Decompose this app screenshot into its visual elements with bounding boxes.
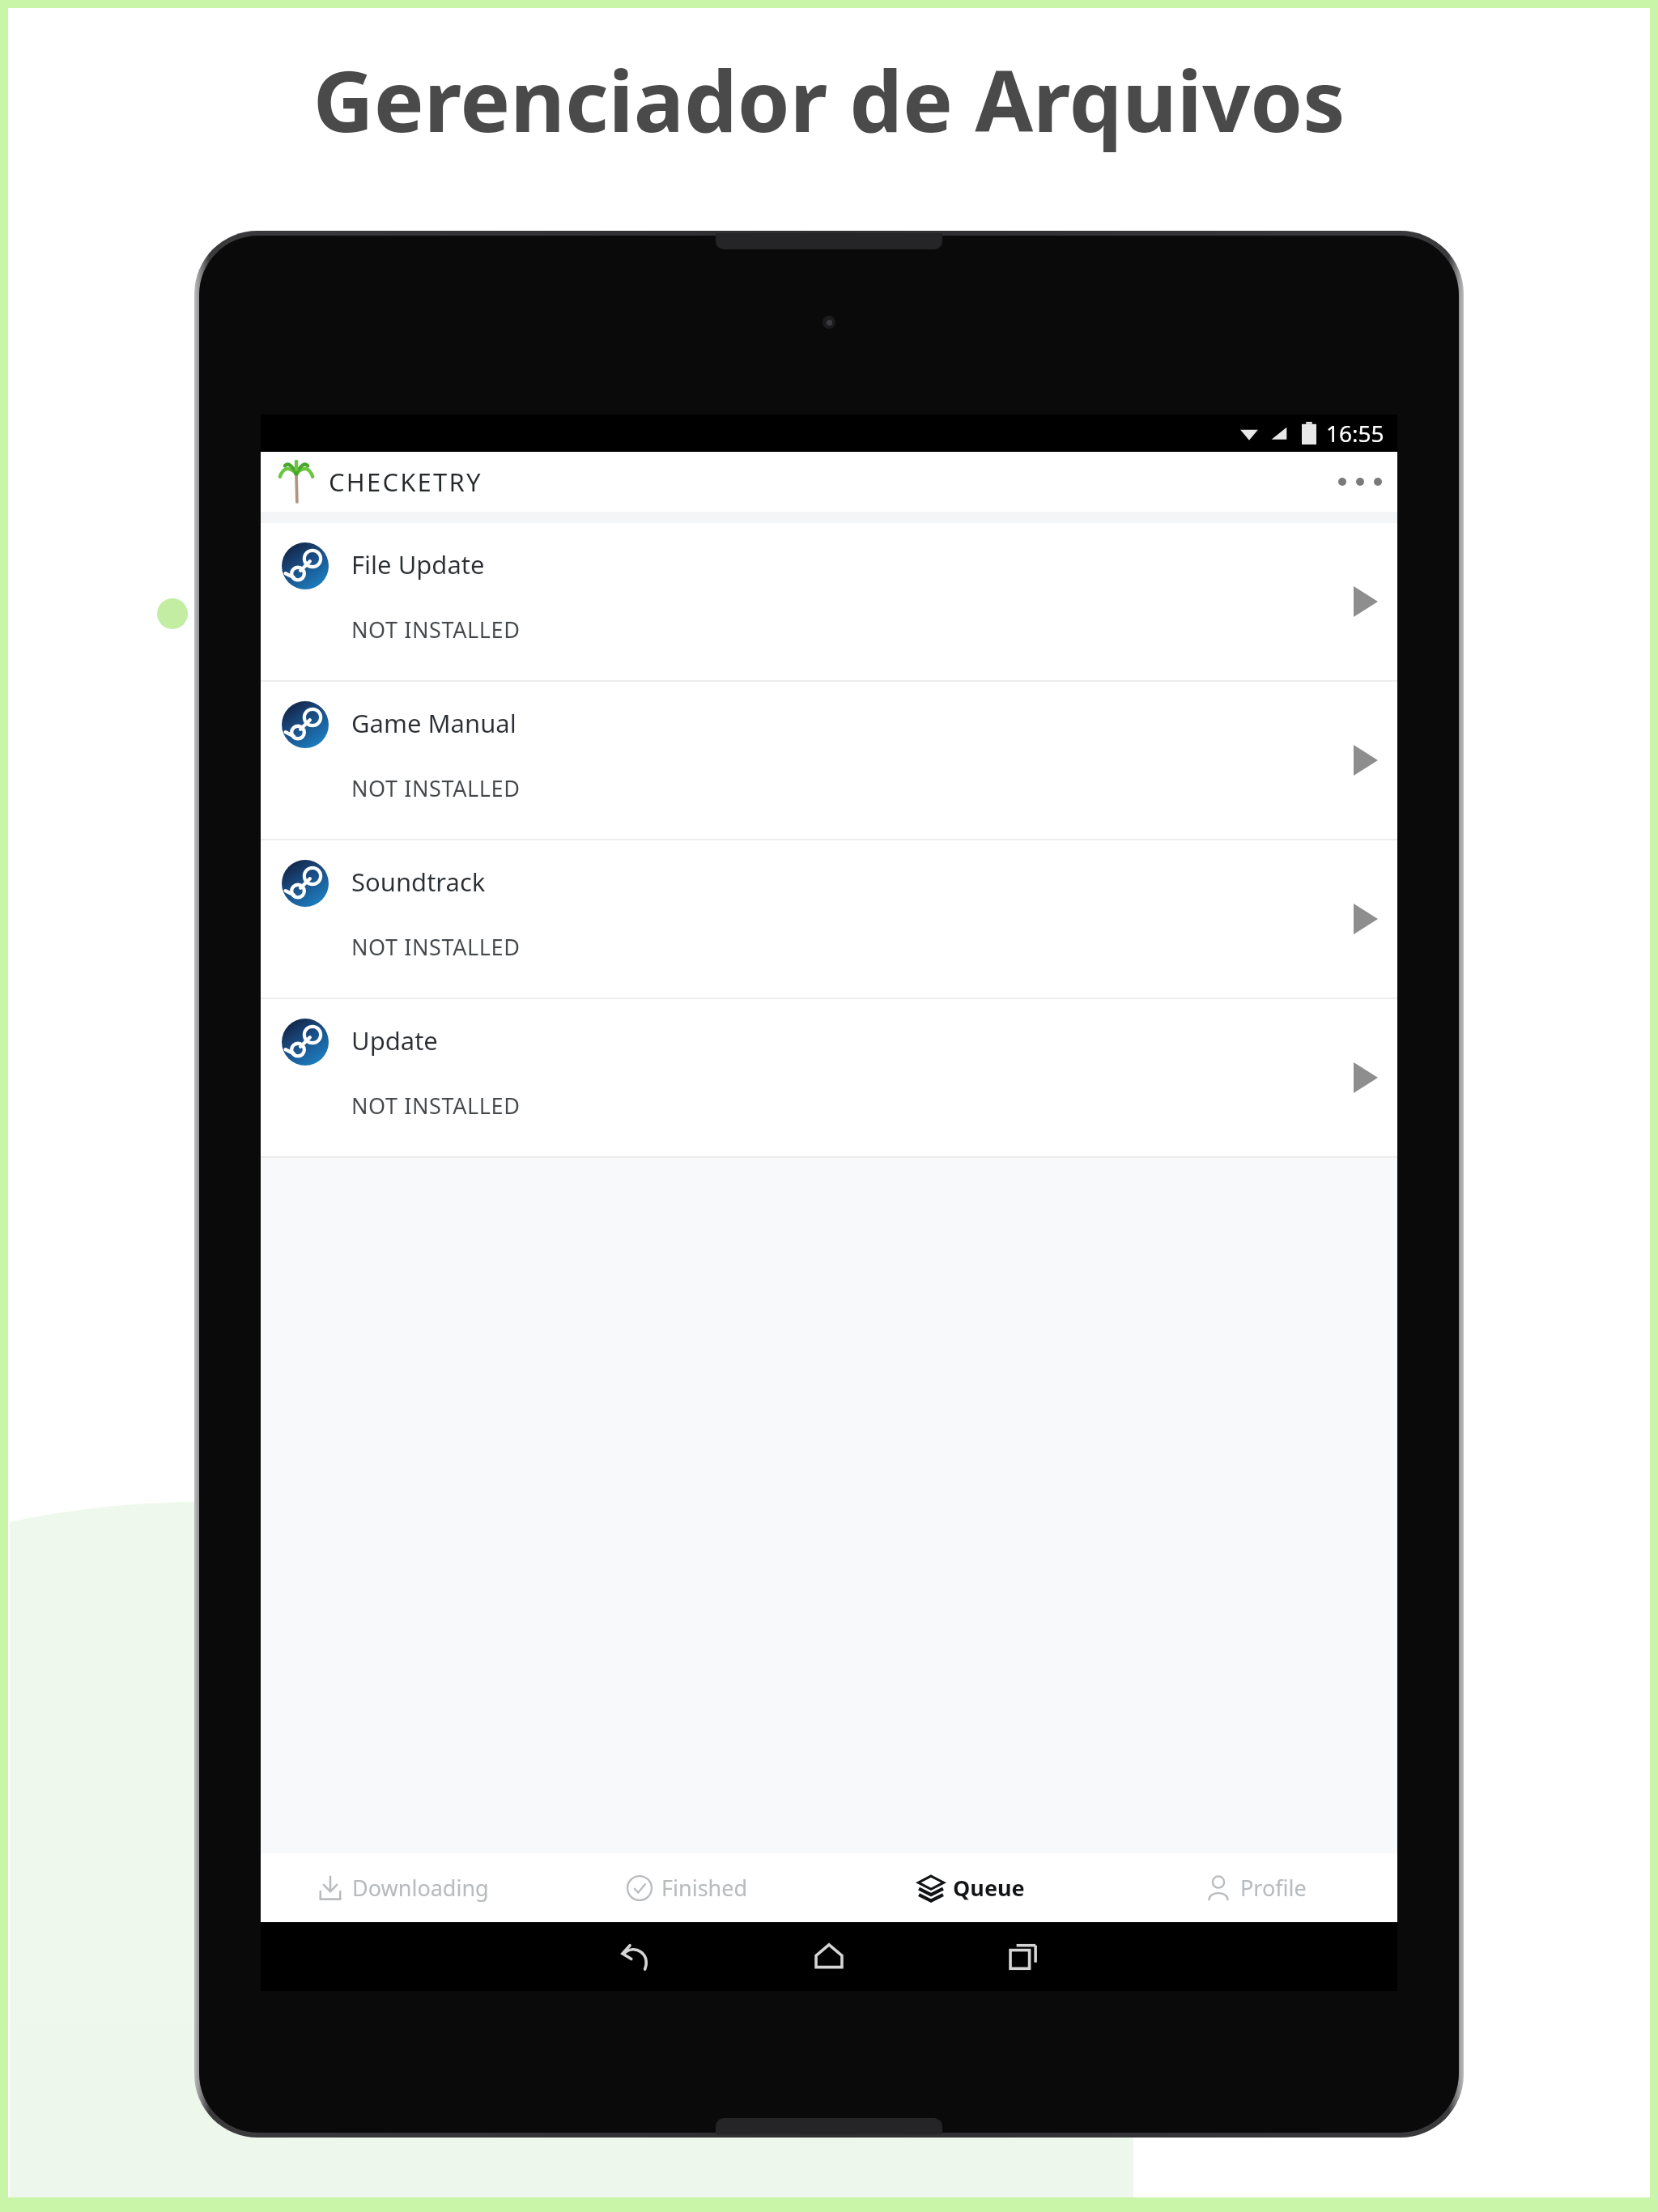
staticText: NOT INSTALLED bbox=[351, 773, 521, 803]
staticText: 16:55 bbox=[1326, 418, 1384, 449]
button[interactable]: Queue bbox=[829, 1853, 1113, 1922]
staticText: CHECKETRY bbox=[329, 465, 483, 499]
staticText: Game Manual bbox=[351, 706, 517, 740]
button[interactable]: More options bbox=[1323, 452, 1397, 512]
button[interactable]: Profile bbox=[1113, 1853, 1397, 1922]
button[interactable]: Recent apps bbox=[963, 1922, 1084, 1991]
staticText: NOT INSTALLED bbox=[351, 1091, 521, 1121]
staticText: Profile bbox=[1240, 1873, 1307, 1903]
staticText: Gerenciador de Arquivos bbox=[312, 42, 1346, 157]
button[interactable]: Back bbox=[574, 1922, 695, 1991]
button[interactable]: Update bbox=[261, 999, 1397, 1158]
staticText: NOT INSTALLED bbox=[351, 615, 521, 644]
button[interactable]: Game Manual bbox=[261, 682, 1397, 840]
staticText: Downloading bbox=[352, 1873, 489, 1903]
button[interactable]: Soundtrack bbox=[261, 840, 1397, 999]
button[interactable]: Home bbox=[768, 1922, 890, 1991]
staticText: File Update bbox=[351, 547, 485, 581]
button[interactable]: Finished bbox=[545, 1853, 829, 1922]
staticText: NOT INSTALLED bbox=[351, 932, 521, 962]
button[interactable]: Downloading bbox=[261, 1853, 545, 1922]
staticText: Soundtrack bbox=[351, 865, 486, 899]
button[interactable]: File Update bbox=[261, 523, 1397, 682]
staticText: Update bbox=[351, 1023, 438, 1057]
staticText: Finished bbox=[661, 1873, 748, 1903]
staticText: Queue bbox=[953, 1873, 1025, 1903]
